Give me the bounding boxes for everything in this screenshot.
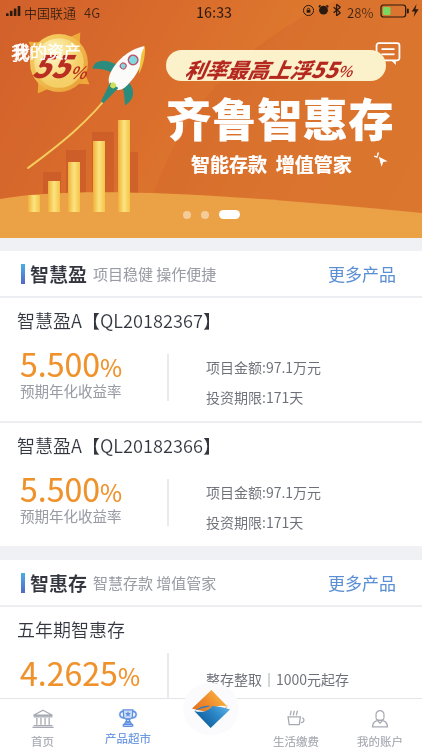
staticText: 中国联通 <box>24 3 77 22</box>
staticText: 齐鲁智惠存 <box>166 85 395 150</box>
staticText: 五年期智惠存 <box>17 616 125 642</box>
staticText: 5.500 <box>20 465 100 511</box>
button[interactable]: 生活缴费 <box>254 698 338 750</box>
staticText: 智惠存 <box>30 569 88 597</box>
staticText: % <box>69 59 86 84</box>
staticText: % <box>100 474 123 509</box>
button[interactable]: 更多产品 <box>328 261 396 286</box>
staticText: 5.500 <box>20 340 100 386</box>
staticText: 16:33 <box>196 2 233 22</box>
button[interactable]: 首页 <box>0 698 85 750</box>
staticText: 预期年化收益率 <box>20 505 122 526</box>
button[interactable]: 消息 <box>375 40 401 66</box>
staticText: % <box>337 60 352 82</box>
staticText: 产品超市 <box>105 730 151 747</box>
staticText: 28% <box>347 3 374 22</box>
button[interactable]: 五年期智惠存 <box>0 607 422 712</box>
staticText: 智慧盈 <box>30 260 88 288</box>
staticText: % <box>100 349 123 384</box>
staticText: 4.2625 <box>20 649 118 695</box>
staticText: 我的资产 <box>13 38 81 63</box>
staticText: 我的账户 <box>357 733 403 750</box>
button[interactable]: 智慧盈A【QL20182367】 <box>0 298 422 421</box>
staticText: 智慧盈A【QL20182367】 <box>17 307 221 333</box>
staticText: 项目金额:97.1万元 <box>206 357 322 377</box>
staticText: 我的资产 <box>11 39 83 65</box>
button[interactable]: 产品超市 <box>85 698 170 750</box>
staticText: 投资期限:171天 <box>206 512 304 532</box>
staticText: 项目稳健 操作便捷 <box>93 263 217 285</box>
staticText: 更多产品 <box>328 261 396 286</box>
staticText: 55 <box>31 42 69 87</box>
button[interactable]: 更多产品 <box>328 570 396 595</box>
staticText: % <box>118 658 141 693</box>
staticText: 利率最高上浮 <box>184 54 310 84</box>
staticText: 55 <box>310 52 337 84</box>
staticText: 4G <box>84 3 101 22</box>
button[interactable]: 智慧盈A【QL20182366】 <box>0 423 422 546</box>
staticText: 项目金额:97.1万元 <box>206 482 322 502</box>
button[interactable]: 我的账户 <box>338 698 422 750</box>
staticText: 整存整取｜1000元起存 <box>206 669 350 689</box>
staticText: 生活缴费 <box>273 733 319 750</box>
staticText: 投资期限:171天 <box>206 387 304 407</box>
staticText: 预期年化收益率 <box>20 380 122 401</box>
staticText: 更多产品 <box>328 570 396 595</box>
staticText: 智能存款 增值管家 <box>191 150 352 178</box>
button[interactable]: 齐鲁银行 <box>183 683 239 735</box>
staticText: 首页 <box>31 733 54 750</box>
staticText: 智慧存款 增值管家 <box>93 572 217 594</box>
staticText: 智慧盈A【QL20182366】 <box>17 432 221 458</box>
